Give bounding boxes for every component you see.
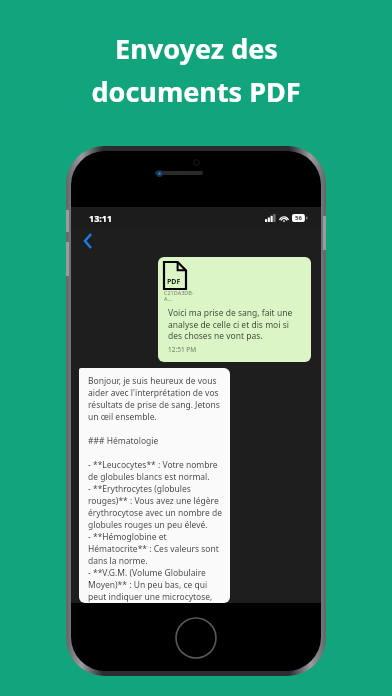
button[interactable]: Back (75, 229, 101, 253)
button[interactable]: Home (175, 617, 217, 659)
staticText: 56 (295, 214, 302, 222)
staticText: 13:11 (89, 212, 113, 224)
button[interactable]: Bonjour, je suis heureux de vous aider a… (79, 368, 230, 603)
staticText: Envoyez des (115, 30, 278, 67)
button[interactable]: PDF (158, 257, 311, 362)
staticText: PDF (167, 277, 181, 287)
staticText: C21DA3DB- A... (164, 289, 194, 303)
staticText: documents PDF (91, 73, 301, 110)
staticText: Voici ma prise de sang, fait une analyse… (168, 307, 303, 342)
staticText: Bonjour, je suis heureux de vous aider a… (88, 375, 225, 603)
staticText: 12:51 PM (168, 345, 197, 354)
